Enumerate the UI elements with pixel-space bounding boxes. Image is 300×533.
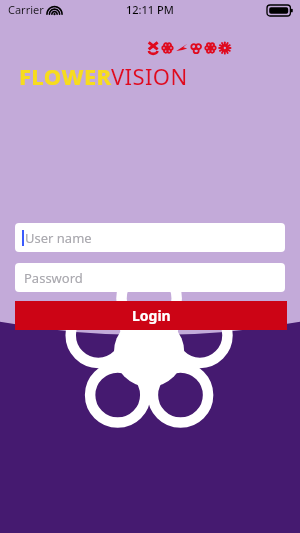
staticText: Password xyxy=(24,269,83,287)
button[interactable]: Password xyxy=(15,263,285,292)
staticText: Login xyxy=(132,306,171,325)
staticText: User name xyxy=(25,229,92,247)
staticText: 12:11 PM xyxy=(126,2,174,17)
staticText: FLOWER xyxy=(19,61,112,91)
staticText: VISION xyxy=(111,61,188,91)
button[interactable]: Login xyxy=(15,301,287,330)
button[interactable]: User name xyxy=(15,223,285,252)
staticText: Carrier xyxy=(8,2,44,17)
